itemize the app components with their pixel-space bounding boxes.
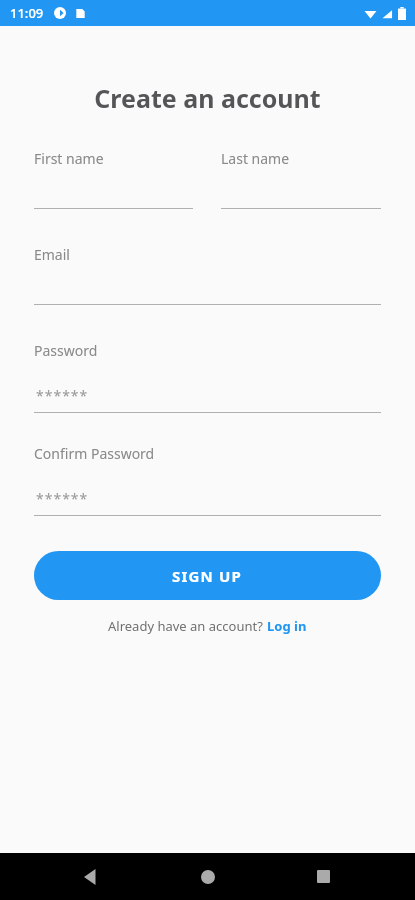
- button[interactable]: Log in: [267, 617, 307, 635]
- staticText: First name: [34, 149, 104, 168]
- staticText: SIGN UP: [172, 566, 243, 586]
- staticText: Log in: [267, 617, 307, 635]
- button[interactable]: Password: [34, 341, 381, 413]
- staticText: Confirm Password: [34, 444, 155, 463]
- staticText: Create an account: [0, 81, 415, 115]
- staticText: ******: [36, 386, 89, 405]
- button[interactable]: Last name: [221, 149, 381, 209]
- button[interactable]: First name: [34, 149, 193, 209]
- button[interactable]: Recent apps: [299, 853, 347, 900]
- staticText: Password: [34, 341, 98, 360]
- staticText: 11:09: [10, 4, 44, 22]
- staticText: Already have an account?: [108, 617, 267, 635]
- staticText: Last name: [221, 149, 290, 168]
- staticText: ******: [36, 489, 89, 508]
- button[interactable]: SIGN UP: [34, 551, 381, 600]
- button[interactable]: Confirm Password: [34, 444, 381, 516]
- button[interactable]: Back: [68, 853, 116, 900]
- button[interactable]: Home: [184, 853, 232, 900]
- staticText: Email: [34, 245, 70, 264]
- button[interactable]: Email: [34, 245, 381, 305]
